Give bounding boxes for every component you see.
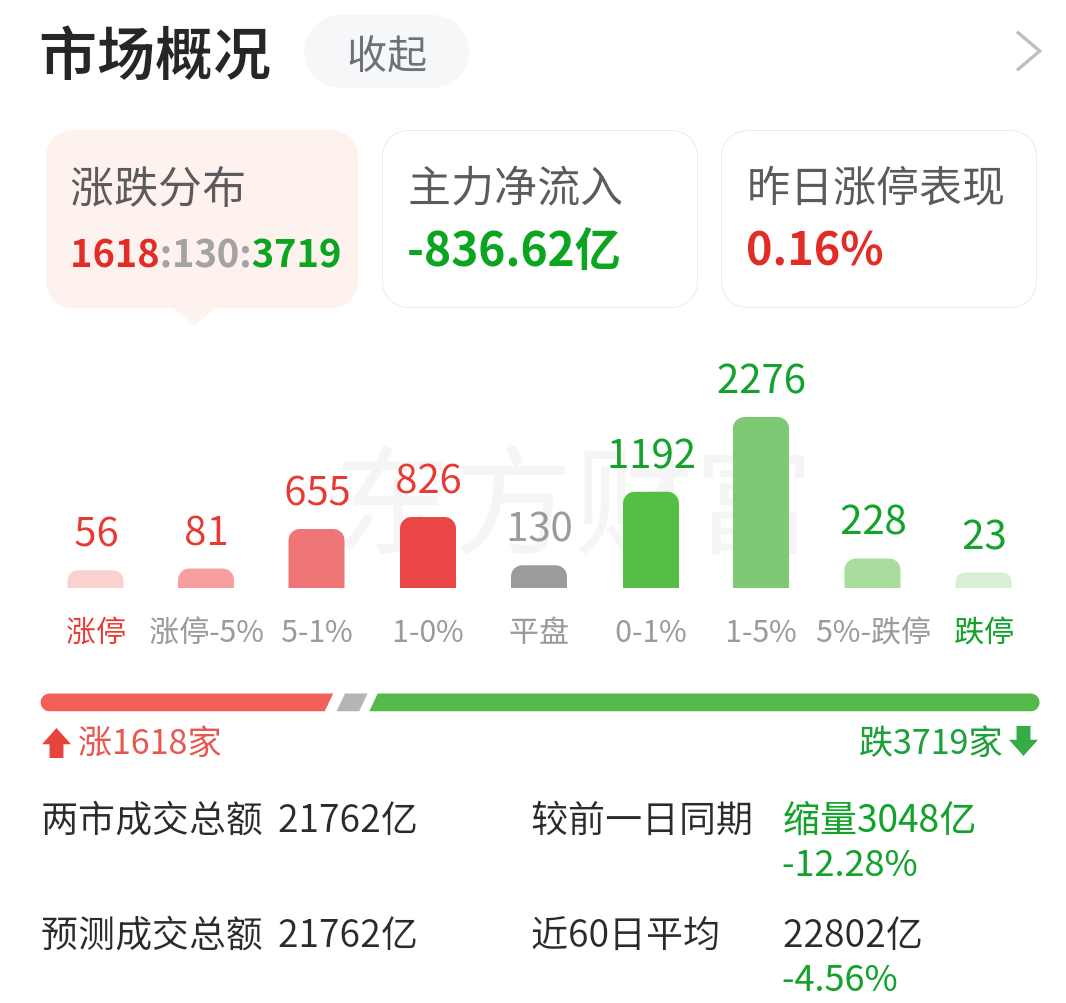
- staticText: 市场概况: [39, 8, 272, 92]
- staticText: 跌3719家: [859, 715, 1003, 757]
- staticText: 21762亿: [278, 789, 418, 843]
- staticText: 跌停: [954, 607, 1014, 650]
- button[interactable]: 平盘 130: [484, 345, 594, 650]
- staticText: 228: [840, 488, 907, 546]
- button[interactable]: 1-0% 826: [373, 345, 483, 650]
- staticText: 5-1%: [281, 607, 353, 650]
- button[interactable]: 涨停-5% 81: [151, 345, 261, 650]
- staticText: 655: [284, 459, 351, 517]
- button[interactable]: 主力净流入: [383, 131, 697, 307]
- staticText: 昨日涨停表现: [747, 152, 1005, 214]
- staticText: 23: [962, 503, 1007, 561]
- button[interactable]: 0-1% 1192: [596, 345, 706, 650]
- staticText: 21762亿: [278, 904, 418, 958]
- staticText: 近60日平均: [531, 904, 721, 958]
- staticText: 主力净流入: [408, 152, 623, 214]
- staticText: 22802亿: [783, 904, 923, 958]
- staticText: 两市成交总额: [41, 789, 263, 843]
- button[interactable]: 跌停 23: [929, 345, 1039, 650]
- button[interactable]: 昨日涨停表现: [722, 131, 1036, 307]
- staticText: 涨1618家: [78, 715, 222, 757]
- button[interactable]: 跌3719家: [850, 722, 1046, 764]
- button[interactable]: 涨1618家: [36, 722, 236, 764]
- staticText: 预测成交总额: [41, 904, 263, 958]
- button[interactable]: 收起: [304, 15, 469, 88]
- staticText: 1-0%: [392, 607, 464, 650]
- staticText: 较前一日同期: [531, 789, 753, 843]
- staticText: 收起: [347, 23, 427, 81]
- button[interactable]: 5-1% 655: [262, 345, 372, 650]
- staticText: 81: [184, 499, 229, 557]
- staticText: 平盘: [509, 607, 569, 650]
- staticText: 涨停-5%: [149, 607, 264, 650]
- staticText: 涨停: [66, 607, 126, 650]
- staticText: -12.28%: [782, 834, 918, 886]
- staticText: 1-5%: [725, 607, 797, 650]
- staticText: -836.62亿: [407, 213, 621, 280]
- staticText: 0.16%: [746, 213, 884, 278]
- staticText: 0-1%: [615, 607, 687, 650]
- button[interactable]: Expand: [990, 13, 1066, 89]
- button[interactable]: 涨停 56: [41, 345, 151, 650]
- staticText: 5%-跌停: [816, 607, 931, 650]
- staticText: 1618:130:3719: [70, 223, 342, 278]
- button[interactable]: 1-5% 2276: [706, 345, 816, 650]
- button[interactable]: 市场概况: [39, 8, 272, 92]
- staticText: 2276: [717, 347, 806, 405]
- staticText: 东方财富: [334, 408, 816, 579]
- staticText: 826: [395, 447, 462, 505]
- staticText: 涨跌分布: [70, 152, 246, 216]
- staticText: 56: [74, 500, 119, 558]
- button[interactable]: 5%-跌停 228: [818, 345, 928, 650]
- staticText: -4.56%: [782, 949, 898, 1001]
- staticText: 130: [506, 495, 573, 553]
- staticText: 缩量3048亿: [783, 789, 977, 843]
- staticText: 1192: [607, 422, 696, 480]
- button[interactable]: 涨跌分布: [46, 130, 358, 308]
